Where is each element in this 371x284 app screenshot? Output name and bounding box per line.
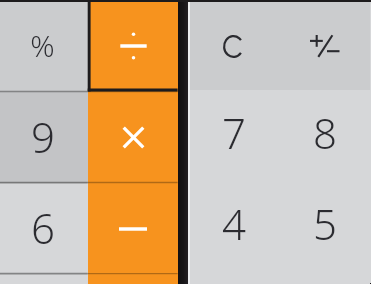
staticText: 7 — [222, 104, 246, 161]
staticText: 6 — [31, 199, 55, 256]
button[interactable]: Multiply — [88, 92, 178, 183]
staticText: 9 — [31, 108, 55, 165]
staticText: 5 — [313, 195, 337, 252]
button[interactable]: 8 — [279, 90, 370, 181]
button[interactable]: Plus minus — [279, 0, 370, 90]
staticText: 8 — [313, 104, 337, 161]
button[interactable]: 5 — [279, 182, 370, 273]
button[interactable]: Clear — [188, 0, 279, 90]
button[interactable]: Minus — [88, 183, 178, 274]
button[interactable]: Divide — [88, 0, 178, 91]
button[interactable]: Plus — [88, 274, 178, 284]
button[interactable]: 4 — [188, 182, 279, 273]
button[interactable]: 6 — [0, 183, 88, 274]
button[interactable]: % — [0, 0, 88, 91]
button[interactable]: 7 — [188, 90, 279, 181]
button[interactable]: 3 — [0, 274, 88, 284]
button[interactable]: 9 — [0, 92, 88, 183]
button[interactable]: 1 — [188, 273, 279, 284]
staticText: 4 — [222, 195, 246, 252]
staticText: % — [30, 25, 55, 66]
